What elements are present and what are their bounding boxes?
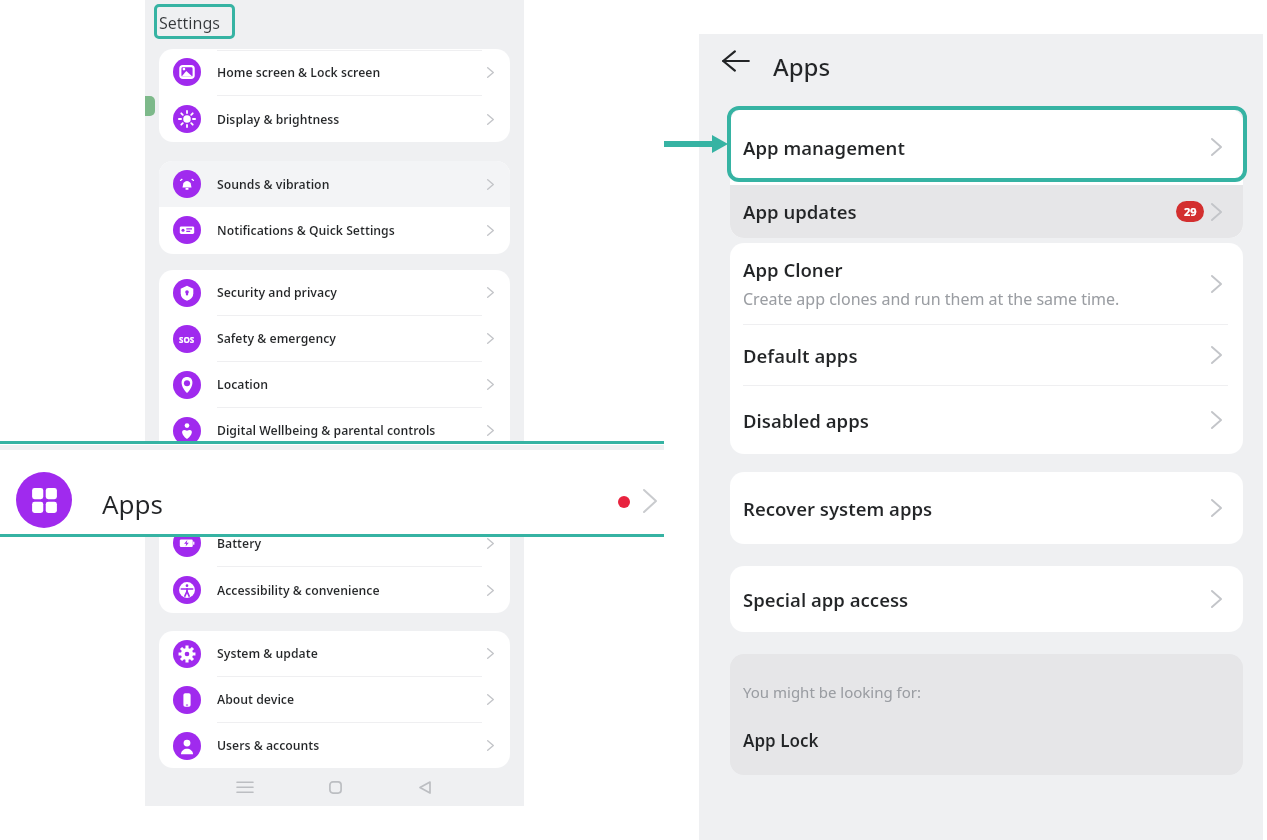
staticText: About device [217,691,295,708]
button[interactable]: Display & brightness [159,96,510,142]
button[interactable]: Recents [225,767,265,807]
button[interactable]: About device [159,677,510,722]
staticText: Disabled apps [743,408,869,433]
staticText: Battery [217,535,262,552]
staticText: Home screen & Lock screen [217,64,381,81]
button[interactable]: Home [315,767,355,807]
staticText: Apps [773,50,831,83]
staticText: Special app access [743,587,909,612]
staticText: App Cloner [743,257,843,282]
staticText: Location [217,376,269,393]
staticText: Safety & emergency [217,330,336,347]
staticText: App management [743,135,905,160]
staticText: Accessibility & convenience [217,582,380,599]
staticText: Digital Wellbeing & parental controls [217,422,436,439]
button[interactable]: Accessibility & convenience [159,567,510,613]
button[interactable]: Notifications & Quick Settings [159,207,510,253]
staticText: Notifications & Quick Settings [217,222,395,239]
button[interactable]: Digital Wellbeing & parental controls [159,408,510,453]
button[interactable]: SOS [159,316,510,361]
button[interactable]: Special app access [730,566,1243,632]
button[interactable]: Back [404,767,444,807]
button[interactable]: Users & accounts [159,723,510,768]
staticText: App updates [743,199,857,224]
button[interactable]: Home screen & Lock screen [159,49,510,95]
staticText: You might be looking for: [743,682,922,702]
button[interactable]: Recover system apps [730,472,1243,544]
button[interactable]: Sounds & vibration [159,161,510,207]
staticText: Display & brightness [217,111,340,128]
staticText: 29 [1184,204,1197,219]
staticText: Settings [159,12,220,34]
staticText: Sounds & vibration [217,176,330,193]
staticText: Default apps [743,343,858,368]
button[interactable]: Location [159,362,510,407]
button[interactable]: App updates [730,185,1243,238]
staticText: Apps [102,486,164,521]
staticText: SOS [179,334,195,345]
button[interactable]: App management [730,109,1243,185]
button[interactable]: Back [707,45,765,76]
button[interactable]: Disabled apps [730,386,1243,454]
staticText: Recover system apps [743,496,933,521]
staticText: Create app clones and run them at the sa… [743,288,1120,310]
button[interactable]: Security and privacy [159,270,510,315]
staticText: Security and privacy [217,284,337,301]
button[interactable]: Default apps [730,325,1243,385]
staticText: Users & accounts [217,737,320,754]
button[interactable]: System & update [159,631,510,676]
staticText: System & update [217,645,318,662]
staticText: App Lock [743,729,819,752]
button[interactable]: App Cloner [730,243,1243,324]
button[interactable]: Battery [159,520,510,566]
